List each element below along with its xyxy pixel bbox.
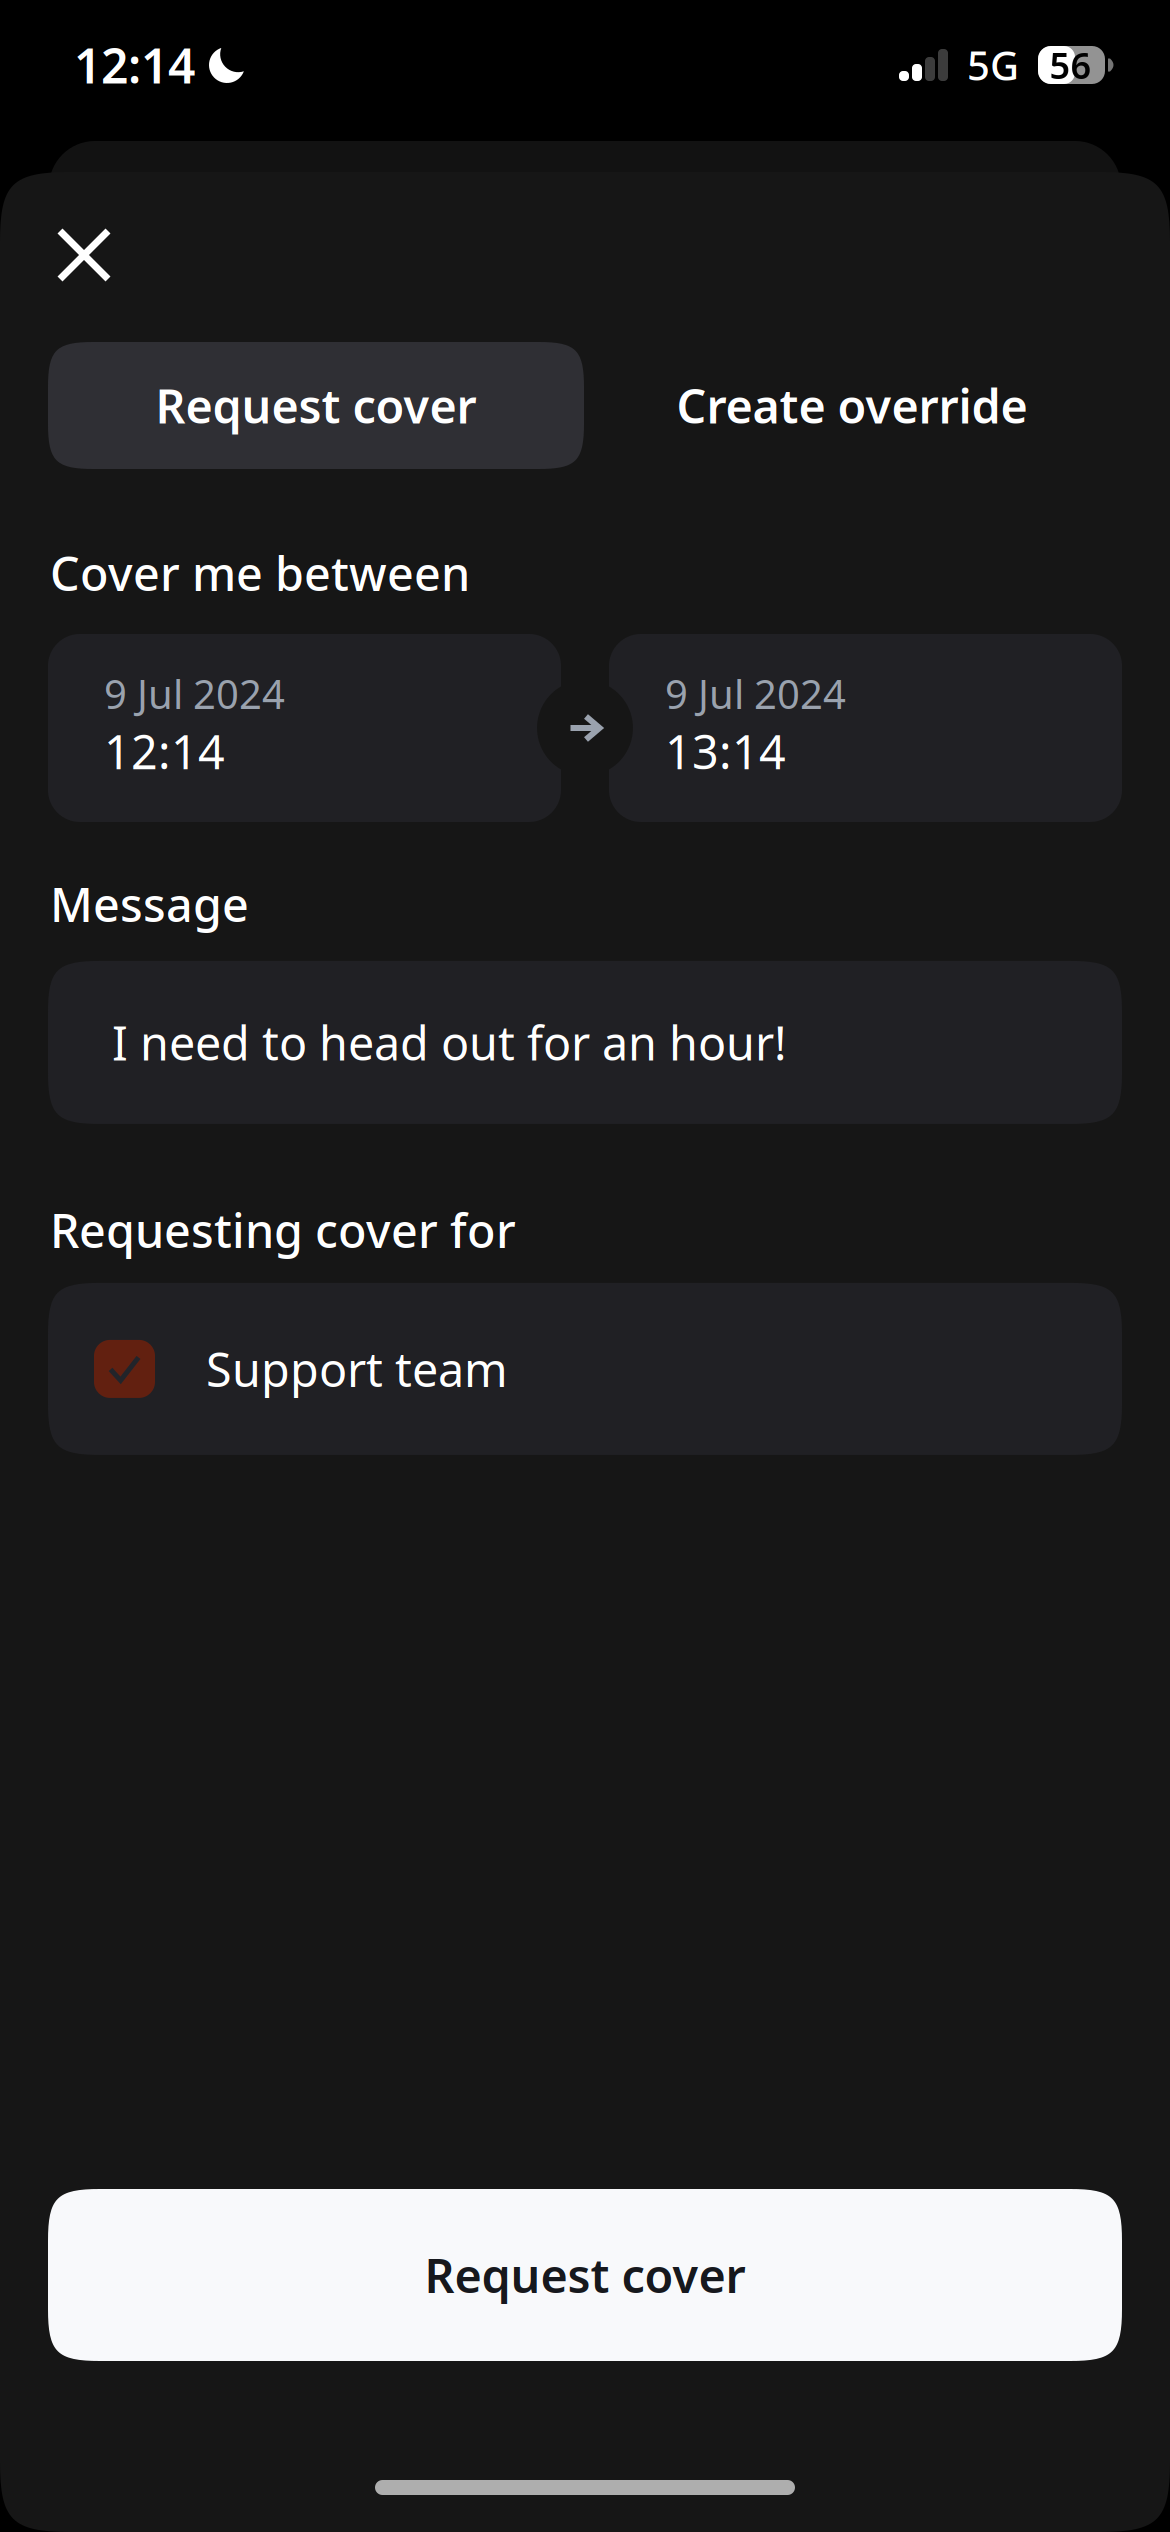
staticText: Requesting cover for bbox=[50, 1199, 516, 1261]
staticText: Request cover bbox=[155, 374, 476, 436]
staticText: 13:14 bbox=[665, 720, 786, 782]
button[interactable]: I need to head out for an hour! bbox=[48, 961, 1122, 1124]
button[interactable]: Request cover bbox=[48, 342, 584, 469]
staticText: I need to head out for an hour! bbox=[112, 1011, 787, 1073]
staticText: Request cover bbox=[424, 2244, 745, 2306]
button[interactable]: 9 Jul 2024 bbox=[48, 634, 561, 822]
staticText: 5G bbox=[967, 38, 1019, 91]
staticText: Create override bbox=[676, 374, 1027, 436]
staticText: 12:14 bbox=[74, 33, 195, 97]
staticText: Message bbox=[50, 873, 249, 935]
staticText: Support team bbox=[206, 1338, 508, 1400]
button[interactable]: Request cover bbox=[48, 2189, 1122, 2361]
button[interactable]: Support team bbox=[48, 1283, 1122, 1455]
button[interactable]: 9 Jul 2024 bbox=[609, 634, 1122, 822]
staticText: 56 bbox=[1049, 41, 1091, 89]
staticText: 9 Jul 2024 bbox=[665, 667, 846, 720]
staticText: 12:14 bbox=[104, 720, 225, 782]
button[interactable]: Create override bbox=[584, 342, 1120, 469]
button[interactable]: Close bbox=[40, 211, 128, 299]
staticText: Cover me between bbox=[50, 542, 470, 604]
staticText: 9 Jul 2024 bbox=[104, 667, 285, 720]
